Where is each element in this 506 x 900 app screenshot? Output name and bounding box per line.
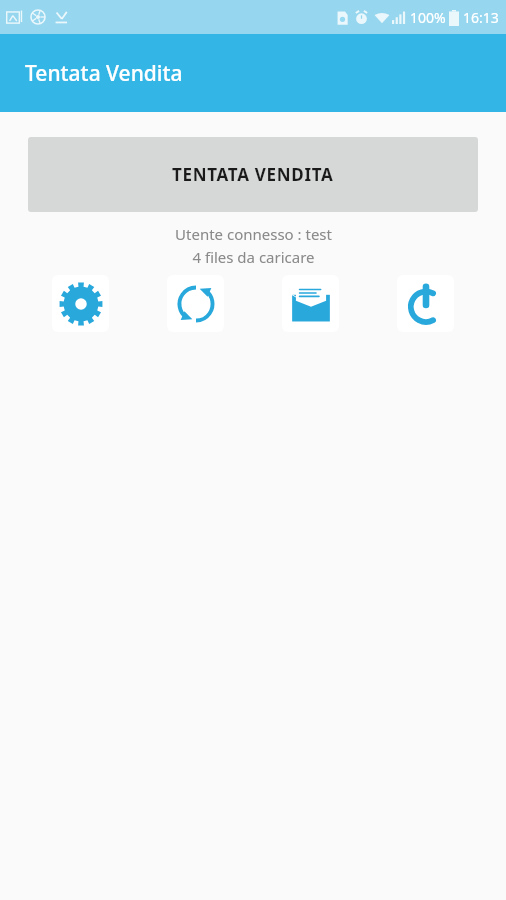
staticText: Utente connesso : test <box>175 224 332 244</box>
staticText: Tentata Vendita <box>25 59 183 88</box>
staticText: 100% <box>410 8 446 27</box>
staticText: 16:13 <box>463 8 499 27</box>
button[interactable]: Sync <box>167 275 224 332</box>
button[interactable]: TENTATA VENDITA <box>28 137 478 212</box>
staticText: 4 files da caricare <box>192 247 315 267</box>
button[interactable]: Power off <box>397 275 454 332</box>
staticText: TENTATA VENDITA <box>172 163 334 186</box>
button[interactable]: Settings <box>52 275 109 332</box>
button[interactable]: Messages <box>282 275 339 332</box>
